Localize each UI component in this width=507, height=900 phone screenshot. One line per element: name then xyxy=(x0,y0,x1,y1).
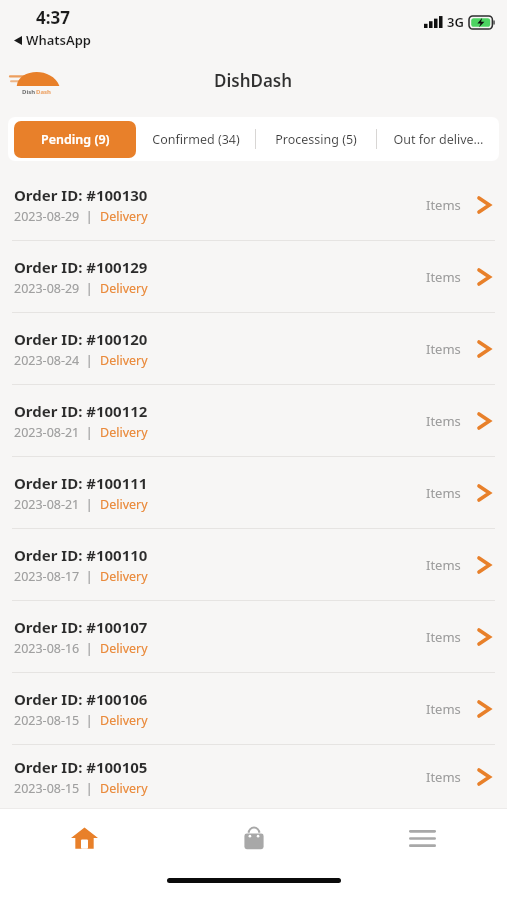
staticText: Order ID: #100106 xyxy=(14,689,148,709)
button[interactable]: Confirmed (34) xyxy=(136,117,255,161)
button[interactable]: Home xyxy=(0,809,169,867)
button[interactable]: Order ID: #100120 xyxy=(0,313,507,385)
button[interactable]: Order ID: #100111 xyxy=(0,457,507,529)
button[interactable]: Out for delive… xyxy=(377,117,499,161)
staticText: Items xyxy=(426,768,461,786)
staticText: Delivery xyxy=(100,496,148,513)
button[interactable]: Order ID: #100107 xyxy=(0,601,507,673)
staticText: DishDash xyxy=(214,69,293,92)
staticText: 2023-08-15 | xyxy=(14,780,100,797)
staticText: Order ID: #100130 xyxy=(14,185,148,205)
staticText: Items xyxy=(426,268,461,286)
button[interactable]: Order ID: #100106 xyxy=(0,673,507,745)
staticText: 3G xyxy=(447,13,464,31)
staticText: Dish xyxy=(22,88,36,96)
staticText: Delivery xyxy=(100,208,148,225)
staticText: Pending (9) xyxy=(41,131,110,148)
staticText: 4:37 xyxy=(36,6,70,29)
staticText: Items xyxy=(426,484,461,502)
staticText: Delivery xyxy=(100,712,148,729)
staticText: 2023-08-16 | xyxy=(14,640,100,657)
button[interactable]: Pending (9) xyxy=(14,121,136,158)
staticText: Processing (5) xyxy=(275,131,357,148)
staticText: 2023-08-21 | xyxy=(14,496,100,513)
staticText: 2023-08-24 | xyxy=(14,352,100,369)
staticText: 2023-08-21 | xyxy=(14,424,100,441)
staticText: Order ID: #100111 xyxy=(14,473,148,493)
staticText: Order ID: #100112 xyxy=(14,401,148,421)
staticText: Order ID: #100107 xyxy=(14,617,148,637)
button[interactable]: Processing (5) xyxy=(256,117,376,161)
staticText: Items xyxy=(426,340,461,358)
staticText: Order ID: #100110 xyxy=(14,545,148,565)
staticText: WhatsApp xyxy=(26,31,91,49)
staticText: Delivery xyxy=(100,780,148,797)
staticText: Order ID: #100120 xyxy=(14,329,148,349)
staticText: Dash xyxy=(36,88,51,96)
staticText: Items xyxy=(426,556,461,574)
staticText: Delivery xyxy=(100,424,148,441)
staticText: 2023-08-29 | xyxy=(14,280,100,297)
staticText: Items xyxy=(426,412,461,430)
staticText: 2023-08-15 | xyxy=(14,712,100,729)
button[interactable]: Order ID: #100105 xyxy=(0,745,507,808)
staticText: Delivery xyxy=(100,280,148,297)
staticText: Confirmed (34) xyxy=(152,131,240,148)
button[interactable]: Menu xyxy=(338,809,507,867)
button[interactable]: Order ID: #100110 xyxy=(0,529,507,601)
button[interactable]: Orders xyxy=(169,809,338,867)
staticText: Order ID: #100105 xyxy=(14,757,148,777)
button[interactable]: Order ID: #100129 xyxy=(0,241,507,313)
button[interactable]: Order ID: #100112 xyxy=(0,385,507,457)
staticText: Delivery xyxy=(100,568,148,585)
staticText: Items xyxy=(426,700,461,718)
staticText: 2023-08-17 | xyxy=(14,568,100,585)
staticText: Out for delive… xyxy=(393,131,484,148)
staticText: Delivery xyxy=(100,352,148,369)
staticText: Delivery xyxy=(100,640,148,657)
staticText: 2023-08-29 | xyxy=(14,208,100,225)
staticText: Order ID: #100129 xyxy=(14,257,148,277)
button[interactable]: Order ID: #100130 xyxy=(0,169,507,241)
staticText: Items xyxy=(426,628,461,646)
staticText: Items xyxy=(426,196,461,214)
